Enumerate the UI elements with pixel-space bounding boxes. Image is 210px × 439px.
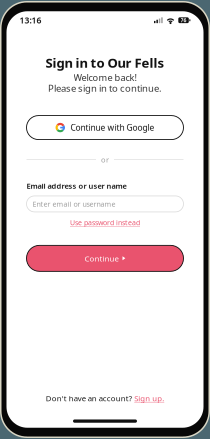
button[interactable]: Sign up. bbox=[134, 393, 164, 403]
staticText: Sign in to Our Fells bbox=[45, 54, 164, 71]
staticText: Enter email or username bbox=[32, 199, 115, 209]
staticText: Use password instead bbox=[70, 218, 140, 227]
button[interactable]: Use password instead bbox=[70, 218, 140, 227]
staticText: Continue bbox=[84, 253, 118, 264]
staticText: Sign up. bbox=[134, 393, 164, 403]
staticText: 13:16 bbox=[19, 14, 41, 26]
staticText: or bbox=[101, 155, 109, 165]
staticText: Email address or user name bbox=[26, 181, 126, 191]
staticText: Don't have an account? bbox=[46, 393, 132, 403]
button[interactable]: Continue with Google bbox=[26, 116, 183, 140]
staticText: Please sign in to continue. bbox=[48, 82, 162, 95]
staticText: Continue with Google bbox=[70, 122, 154, 133]
staticText: 76 bbox=[181, 17, 187, 24]
staticText: Welcome back! bbox=[73, 71, 136, 84]
button[interactable]: Continue bbox=[26, 245, 183, 271]
